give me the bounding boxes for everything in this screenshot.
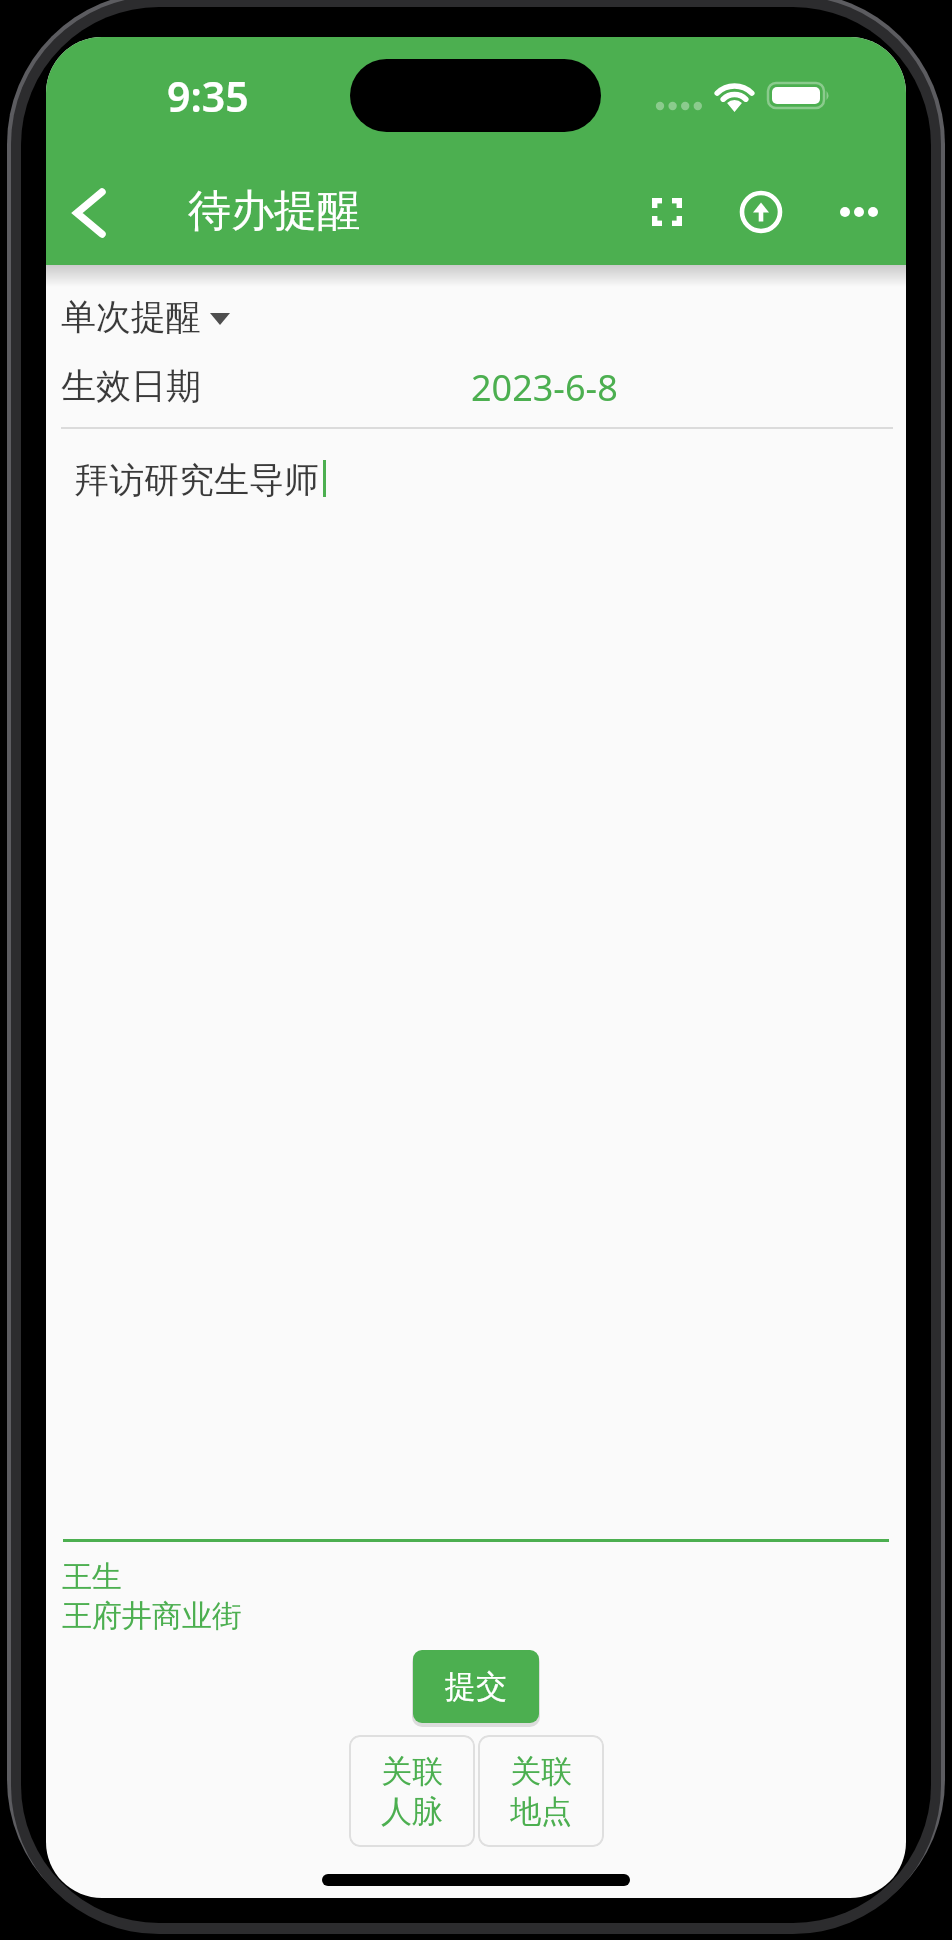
staticText: 9:35 (167, 68, 249, 124)
button[interactable]: 提交 (413, 1650, 539, 1723)
button[interactable] (832, 187, 886, 237)
button[interactable] (60, 185, 120, 241)
staticText: 拜访研究生导师 (74, 458, 319, 499)
button[interactable]: 关联 人脉 (349, 1735, 475, 1847)
button[interactable] (46, 359, 906, 411)
staticText: 王生 (62, 1558, 122, 1596)
button[interactable] (642, 187, 692, 237)
staticText: 王府井商业街 (62, 1597, 242, 1635)
staticText: 生效日期 (61, 364, 201, 405)
button[interactable] (46, 437, 906, 527)
staticText: 单次提醒 (61, 295, 201, 335)
button[interactable]: 单次提醒 (61, 295, 246, 335)
button[interactable]: 关联 地点 (478, 1735, 604, 1847)
staticText: 关联 地点 (510, 1752, 572, 1831)
staticText: 提交 (445, 1667, 507, 1706)
staticText: 关联 人脉 (381, 1752, 443, 1831)
staticText: 待办提醒 (188, 184, 360, 238)
staticText: 2023-6-8 (471, 363, 618, 403)
button[interactable] (736, 187, 786, 237)
